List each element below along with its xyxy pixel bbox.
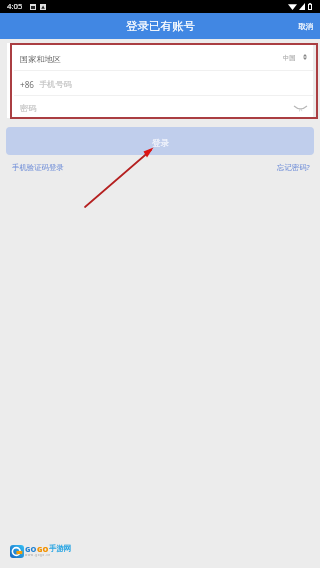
staticText: 登录已有账号 xyxy=(126,19,195,33)
button[interactable]: 手机验证码登录 xyxy=(0,160,72,175)
button[interactable]: +86 xyxy=(7,71,313,95)
staticText: 手游网 xyxy=(49,544,72,553)
staticText: 4:05 xyxy=(7,1,23,12)
staticText: GO xyxy=(37,544,49,554)
staticText: 取消 xyxy=(298,22,313,31)
staticText: +86 xyxy=(20,79,35,90)
button[interactable]: 取消 xyxy=(288,17,320,36)
staticText: 手机号码 xyxy=(39,79,72,89)
staticText: 忘记密码? xyxy=(277,162,310,172)
staticText: GO xyxy=(25,544,37,554)
staticText: 密码 xyxy=(20,103,37,113)
button[interactable]: Show password xyxy=(293,99,307,115)
staticText: w w w . g o g o . c n xyxy=(25,553,51,557)
button[interactable]: 忘记密码? xyxy=(269,159,320,175)
button[interactable]: 密码 xyxy=(7,96,313,118)
button[interactable]: 登录 xyxy=(6,127,314,155)
staticText: 中国 xyxy=(283,54,296,62)
staticText: 登录 xyxy=(152,138,170,149)
staticText: 国家和地区 xyxy=(20,54,61,64)
staticText: 手机验证码登录 xyxy=(12,163,64,172)
button[interactable]: 国家和地区 xyxy=(7,43,313,70)
